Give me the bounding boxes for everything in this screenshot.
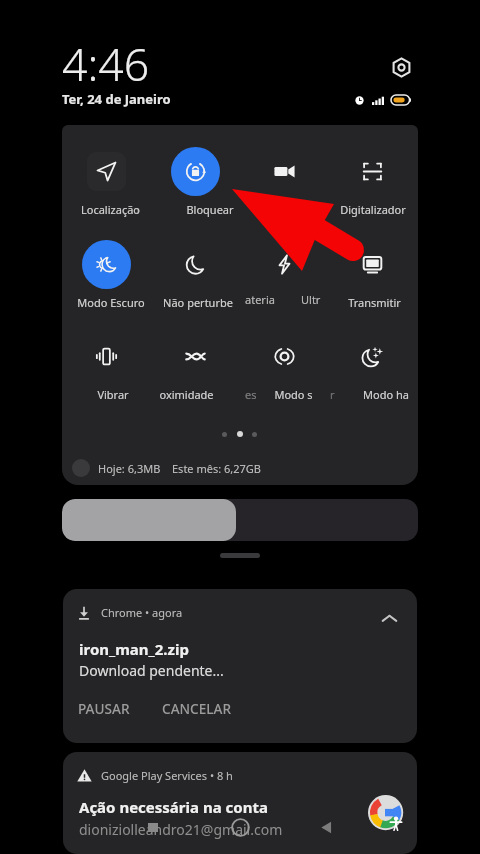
button[interactable]: Vibrar bbox=[62, 332, 151, 402]
staticText: iron_man_2.zip bbox=[79, 639, 189, 659]
button[interactable]: Transmitir bbox=[328, 240, 417, 310]
button[interactable]: Digitalizador bbox=[328, 147, 417, 217]
staticText: Ação necessária na conta bbox=[79, 797, 268, 817]
staticText: PAUSAR bbox=[78, 699, 130, 718]
staticText: Bloquear bbox=[186, 202, 234, 217]
button[interactable]: Chrome • agora bbox=[63, 589, 417, 743]
staticText: Ultr bbox=[301, 292, 321, 307]
button[interactable]: bolt bbox=[240, 240, 329, 310]
staticText: dioniziolleandro21@gmail.com bbox=[79, 820, 283, 839]
button[interactable]: Google Play Services • 8 h bbox=[63, 752, 417, 854]
staticText: Modo s bbox=[274, 387, 313, 402]
button[interactable]: Google Assistant bbox=[366, 793, 410, 837]
staticText: Ter, 24 de Janeiro bbox=[62, 90, 171, 108]
staticText: 4:46 bbox=[62, 33, 150, 94]
staticText: Este mês: 6,27GB bbox=[172, 461, 261, 476]
staticText: Transmitir bbox=[348, 295, 401, 310]
button[interactable]: Modo Escuro bbox=[62, 240, 151, 310]
staticText: Digitalizador bbox=[340, 202, 406, 217]
staticText: Chrome • agora bbox=[101, 605, 183, 620]
button[interactable]: Não perturbe bbox=[151, 240, 240, 310]
button[interactable]: video bbox=[240, 147, 329, 217]
staticText: Vibrar bbox=[97, 387, 129, 402]
button[interactable]: CANCELAR bbox=[154, 693, 240, 724]
button[interactable]: Brightness bbox=[62, 499, 418, 541]
button[interactable]: Back bbox=[313, 814, 339, 840]
staticText: es bbox=[245, 387, 257, 402]
button[interactable]: Recents bbox=[140, 814, 166, 840]
staticText: Modo Escuro bbox=[77, 295, 145, 310]
button[interactable]: Modo ha bbox=[328, 332, 417, 402]
button[interactable]: Bloquear bbox=[151, 147, 240, 217]
button[interactable]: Localização bbox=[62, 147, 151, 217]
staticText: Hoje: 6,3MB bbox=[98, 461, 161, 476]
staticText: Não perturbe bbox=[163, 295, 233, 310]
staticText: CANCELAR bbox=[162, 699, 232, 718]
button[interactable]: oximidade bbox=[151, 332, 240, 402]
staticText: › bbox=[136, 202, 140, 217]
button[interactable]: Home bbox=[227, 814, 253, 840]
button[interactable]: PAUSAR bbox=[70, 693, 138, 724]
staticText: Localização bbox=[81, 202, 140, 217]
button[interactable]: Collapse bbox=[376, 605, 402, 631]
staticText: r bbox=[330, 387, 335, 402]
staticText: Google Play Services • 8 h bbox=[101, 768, 233, 783]
button[interactable]: Settings bbox=[387, 53, 415, 81]
staticText: oximidade bbox=[159, 387, 214, 402]
staticText: ateria bbox=[245, 292, 275, 307]
staticText: Modo ha bbox=[363, 387, 409, 402]
staticText: Download pendente... bbox=[79, 661, 224, 680]
button[interactable]: Modo s bbox=[240, 332, 329, 402]
